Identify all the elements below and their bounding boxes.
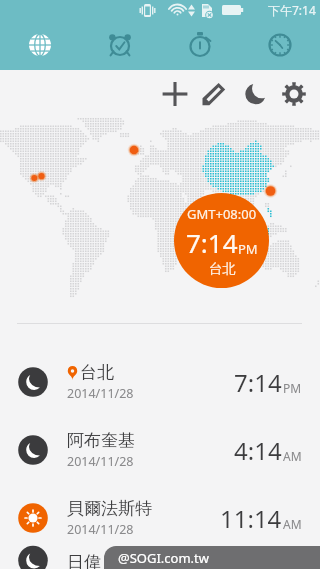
staticText: AM <box>283 516 302 532</box>
staticText: 4:14 <box>234 434 282 467</box>
button[interactable]: Timer <box>240 20 320 70</box>
staticText: AM <box>283 448 302 464</box>
staticText: @SOGI.com.tw <box>118 549 209 567</box>
staticText: 日偉 <box>67 552 101 569</box>
staticText: 7:14 <box>234 366 282 399</box>
button[interactable]: Edit <box>194 70 234 118</box>
staticText: 阿布奎基 <box>67 430 135 451</box>
staticText: 台北 <box>80 362 114 383</box>
button[interactable]: Night mode <box>235 70 275 118</box>
staticText: 下午7:14 <box>268 2 316 18</box>
button[interactable]: 台北 <box>0 348 320 416</box>
staticText: 2014/11/28 <box>67 521 134 538</box>
button[interactable]: Settings <box>274 70 314 118</box>
staticText: 7:14 <box>186 225 238 260</box>
staticText: 2014/11/28 <box>67 385 134 402</box>
button[interactable]: Stopwatch <box>160 20 240 70</box>
button[interactable]: 日偉 <box>0 552 320 569</box>
button[interactable]: Alarm <box>80 20 160 70</box>
button[interactable]: 貝爾法斯特 <box>0 484 320 552</box>
staticText: 11:14 <box>220 502 282 535</box>
staticText: 貝爾法斯特 <box>67 498 152 519</box>
staticText: PM <box>283 380 302 396</box>
button[interactable]: 阿布奎基 <box>0 416 320 484</box>
staticText: GMT+08:00 <box>187 205 257 223</box>
button[interactable]: World clock <box>0 20 80 70</box>
staticText: 台北 <box>209 260 236 277</box>
staticText: 2014/11/28 <box>67 453 134 470</box>
button[interactable]: GMT+08:00 <box>174 193 269 288</box>
staticText: PM <box>238 240 258 258</box>
button[interactable]: Add city <box>155 70 195 118</box>
